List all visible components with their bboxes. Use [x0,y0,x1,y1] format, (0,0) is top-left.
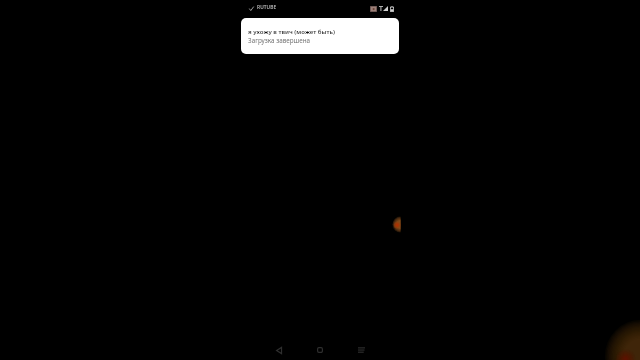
button[interactable]: Video player [0,0,640,360]
staticText: я ухожу в твич (может быть) [248,27,335,35]
button[interactable]: Recent apps [350,339,372,360]
staticText: Загрузка завершена [248,36,311,45]
button[interactable]: я ухожу в твич (может быть) [241,18,399,54]
button[interactable]: Home [309,339,331,360]
button[interactable]: Back [268,339,290,360]
staticText: RUTUBE [257,4,277,11]
